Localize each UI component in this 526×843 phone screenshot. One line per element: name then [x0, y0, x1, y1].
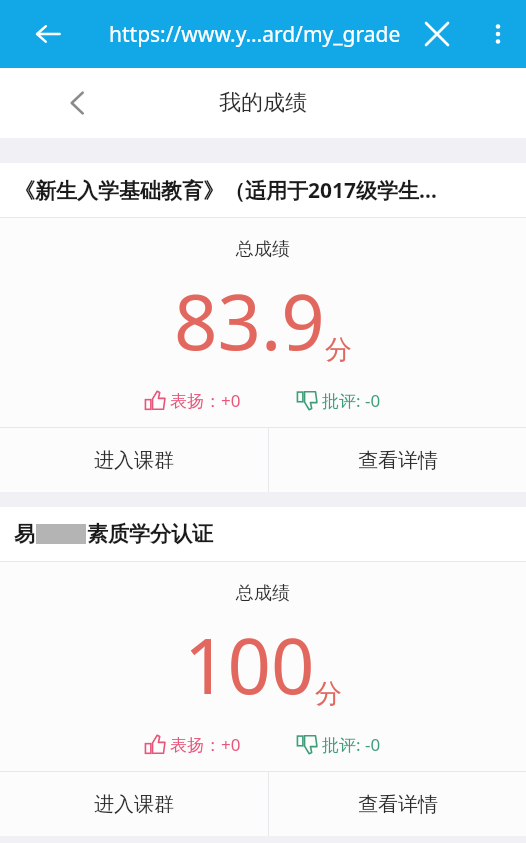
staticText: 进入课群	[94, 448, 174, 473]
button[interactable]: More options	[476, 12, 520, 56]
staticText: 批评: -0	[322, 389, 381, 412]
staticText: 表扬：+0	[170, 389, 241, 412]
staticText: 83.9	[174, 269, 325, 373]
staticText: 查看详情	[358, 792, 438, 817]
staticText: 我的成绩	[219, 89, 307, 117]
button[interactable]: 进入课群	[0, 428, 268, 492]
staticText: 易	[14, 521, 35, 547]
staticText: 总成绩	[236, 238, 290, 261]
button[interactable]: 进入课群	[0, 772, 268, 836]
staticText: 分	[315, 677, 342, 711]
staticText: 查看详情	[358, 448, 438, 473]
staticText: 总成绩	[236, 582, 290, 605]
staticText: 100	[184, 613, 315, 717]
staticText: 《新生入学基础教育》（适用于2017级学生…	[14, 176, 518, 205]
button[interactable]: 查看详情	[269, 772, 526, 836]
staticText: 素质学分认证	[87, 521, 213, 547]
staticText: 进入课群	[94, 792, 174, 817]
button[interactable]: 表扬：+0	[145, 389, 241, 412]
button[interactable]: Navigate up	[54, 79, 102, 127]
staticText: https://www.y…ard/my_grade	[109, 20, 401, 49]
button[interactable]: 批评: -0	[297, 733, 381, 756]
button[interactable]: 批评: -0	[297, 389, 381, 412]
button[interactable]: 表扬：+0	[145, 733, 241, 756]
staticText: 表扬：+0	[170, 733, 241, 756]
staticText: 批评: -0	[322, 733, 381, 756]
button[interactable]: 查看详情	[269, 428, 526, 492]
staticText: 分	[325, 333, 352, 367]
button[interactable]: Back	[24, 10, 72, 58]
button[interactable]: Close	[414, 11, 460, 57]
